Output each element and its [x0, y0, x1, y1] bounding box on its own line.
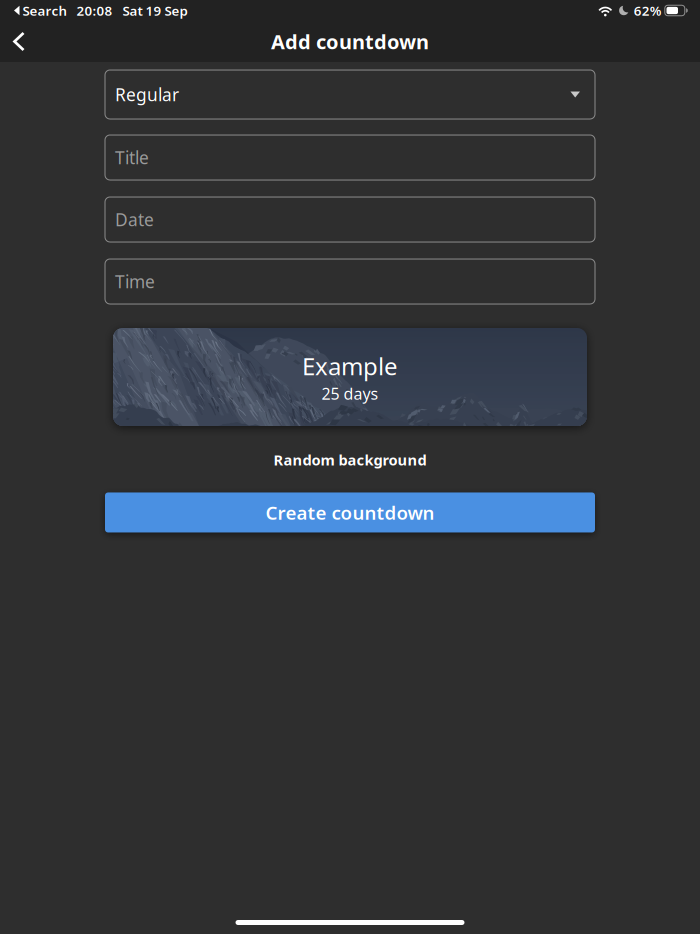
- button[interactable]: Back: [0, 21, 40, 61]
- button[interactable]: Regular: [105, 70, 595, 119]
- staticText: Sat 19 Sep: [122, 2, 187, 19]
- button[interactable]: Date: [105, 197, 595, 242]
- button[interactable]: Create countdown: [105, 492, 595, 532]
- staticText: Example: [302, 350, 398, 382]
- staticText: 25 days: [321, 383, 378, 404]
- staticText: Random background: [273, 450, 426, 469]
- staticText: 62%: [634, 2, 662, 19]
- staticText: Date: [115, 208, 154, 231]
- staticText: Title: [115, 146, 149, 169]
- staticText: Search: [22, 2, 67, 19]
- staticText: Create countdown: [265, 500, 434, 525]
- staticText: Add countdown: [271, 28, 429, 55]
- button[interactable]: Title: [105, 135, 595, 180]
- button[interactable]: Time: [105, 259, 595, 304]
- button[interactable]: Random background: [105, 443, 595, 476]
- staticText: Time: [115, 270, 155, 293]
- staticText: Regular: [115, 83, 179, 106]
- staticText: 20:08: [76, 2, 112, 19]
